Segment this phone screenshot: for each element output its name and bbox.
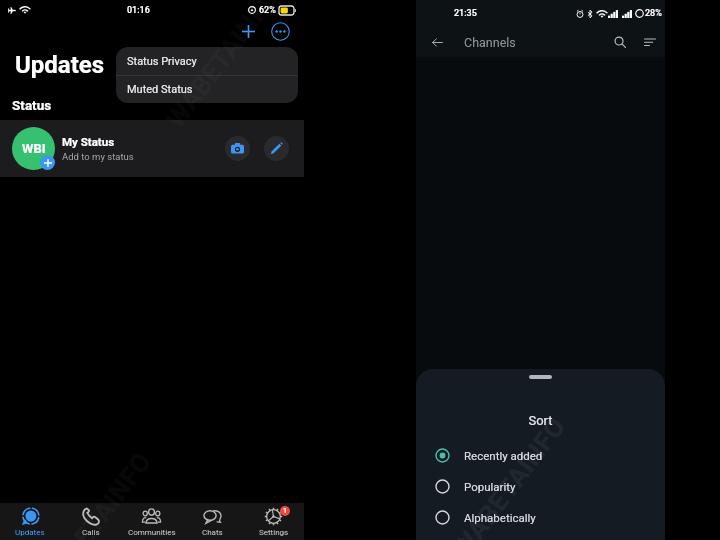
staticText: WABETAINFO — [160, 0, 285, 134]
button[interactable]: 1 — [243, 503, 304, 540]
staticText: Communities — [128, 528, 176, 537]
staticText: 1 — [283, 507, 287, 515]
button[interactable]: Status Privacy — [116, 47, 298, 75]
staticText: 21:35 — [454, 8, 477, 19]
staticText: 01:16 — [127, 5, 150, 16]
button[interactable]: Popularity — [416, 471, 665, 502]
staticText: My Status — [62, 135, 115, 148]
button[interactable]: Sort — [637, 29, 663, 55]
staticText: Channels — [464, 35, 516, 50]
button[interactable]: Edit — [264, 136, 289, 161]
staticText: Add to my status — [62, 151, 134, 162]
button[interactable]: More options — [268, 19, 292, 43]
button[interactable]: Communities — [121, 503, 182, 540]
staticText: WBI — [22, 141, 46, 156]
staticText: 28% — [645, 8, 662, 19]
staticText: Status Privacy — [127, 55, 197, 68]
staticText: 62% — [259, 5, 276, 16]
staticText: Sort — [416, 413, 665, 428]
staticText: Recently added — [464, 449, 543, 462]
staticText: Settings — [259, 528, 289, 537]
staticText: Muted Status — [127, 83, 298, 96]
staticText: WABETAINFO — [447, 411, 572, 540]
staticText: Popularity — [464, 480, 516, 493]
staticText: Chats — [202, 528, 223, 537]
button[interactable]: Chats — [182, 503, 243, 540]
button[interactable]: Add — [236, 19, 260, 43]
staticText: Calls — [82, 528, 100, 537]
button[interactable]: WBI — [0, 120, 304, 177]
button[interactable]: Camera — [225, 136, 250, 161]
button[interactable]: Muted Status — [116, 76, 298, 103]
button[interactable]: Search — [607, 29, 633, 55]
button[interactable]: Updates — [0, 503, 60, 540]
staticText: Alphabetically — [464, 511, 536, 524]
button[interactable]: Back — [424, 29, 450, 55]
button[interactable]: Calls — [60, 503, 121, 540]
staticText: WABETAINFO — [33, 446, 158, 540]
button[interactable]: Recently added — [416, 440, 665, 471]
staticText: Status — [12, 97, 52, 113]
staticText: Updates — [15, 528, 45, 537]
button[interactable]: Alphabetically — [416, 502, 665, 533]
staticText: Updates — [15, 51, 105, 79]
